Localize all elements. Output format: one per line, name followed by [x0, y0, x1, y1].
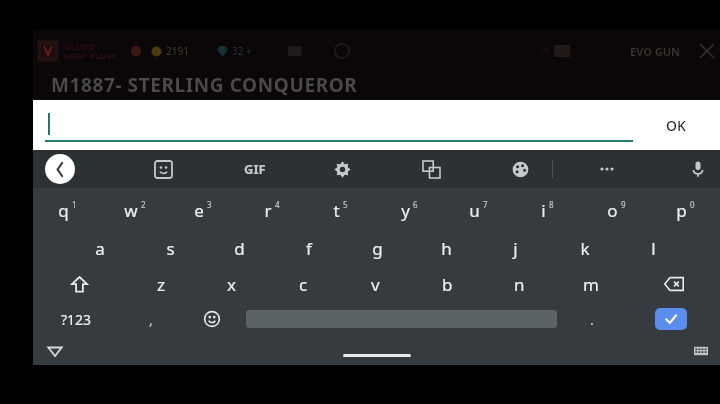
staticText: o: [607, 199, 618, 222]
staticText: g: [372, 237, 383, 260]
button[interactable]: Profile: [37, 40, 59, 62]
button[interactable]: Stickers: [148, 154, 178, 184]
button[interactable]: p: [651, 190, 720, 230]
staticText: 32 +: [232, 44, 252, 58]
staticText: OK: [666, 116, 686, 135]
staticText: 5: [343, 199, 348, 210]
button[interactable]: Settings: [327, 154, 357, 184]
staticText: y: [401, 199, 410, 222]
button[interactable]: Backspace: [627, 266, 720, 302]
staticText: x: [227, 273, 236, 296]
button[interactable]: GIF: [238, 154, 272, 184]
staticText: n: [514, 273, 525, 296]
button[interactable]: c: [267, 266, 339, 302]
button[interactable]: a: [65, 230, 135, 266]
staticText: z: [157, 273, 165, 296]
button[interactable]: m: [555, 266, 627, 302]
button[interactable]: Enter: [655, 308, 687, 330]
button[interactable]: Voice input: [683, 154, 713, 184]
staticText: 8: [549, 199, 554, 210]
staticText: 6: [413, 199, 418, 210]
button[interactable]: o: [582, 190, 651, 230]
staticText: 2191: [166, 44, 189, 58]
button[interactable]: Change keyboard: [688, 338, 714, 364]
staticText: c: [299, 273, 308, 296]
staticText: GLOBD: [64, 40, 96, 52]
button[interactable]: s: [135, 230, 205, 266]
button[interactable]: j: [481, 230, 550, 266]
staticText: 3: [207, 199, 212, 210]
button[interactable]: OK: [658, 110, 694, 141]
button[interactable]: z: [125, 266, 196, 302]
button[interactable]: y: [375, 190, 444, 230]
staticText: f: [306, 237, 312, 260]
staticText: w: [124, 199, 138, 222]
staticText: M1887- STERLING CONQUEROR: [51, 72, 358, 98]
button[interactable]: Hide keyboard: [41, 337, 69, 365]
button[interactable]: n: [483, 266, 555, 302]
button[interactable]: b: [411, 266, 483, 302]
button[interactable]: ?123: [33, 302, 120, 336]
button[interactable]: Back: [45, 154, 75, 184]
button[interactable]: .: [561, 302, 622, 336]
staticText: e: [194, 199, 204, 222]
staticText: v: [371, 273, 380, 296]
staticText: m: [583, 273, 599, 296]
button[interactable]: v: [339, 266, 411, 302]
button[interactable]: l: [619, 230, 688, 266]
staticText: .: [590, 310, 594, 329]
staticText: a: [95, 237, 105, 260]
button[interactable]: Themes: [505, 154, 535, 184]
staticText: EVO GUN: [630, 44, 680, 59]
button[interactable]: t: [306, 190, 375, 230]
staticText: 9: [621, 199, 626, 210]
button[interactable]: EVO GUN: [628, 42, 682, 61]
staticText: 72: [542, 46, 551, 56]
button[interactable]: ,: [120, 302, 181, 336]
staticText: 7: [483, 199, 488, 210]
staticText: 1: [72, 199, 77, 210]
staticText: r: [264, 199, 272, 222]
button[interactable]: r: [237, 190, 306, 230]
staticText: t: [333, 199, 340, 222]
staticText: l: [651, 237, 656, 260]
staticText: u: [469, 199, 480, 222]
staticText: s: [166, 237, 175, 260]
staticText: j: [513, 237, 518, 260]
button[interactable]: k: [550, 230, 619, 266]
button[interactable]: More options: [593, 155, 621, 183]
staticText: 4: [275, 199, 280, 210]
staticText: NIGHT PLAYER: [64, 52, 117, 62]
button[interactable]: q: [33, 190, 101, 230]
staticText: k: [580, 237, 590, 260]
button[interactable]: d: [205, 230, 274, 266]
staticText: ?123: [61, 310, 92, 329]
button[interactable]: Shift: [33, 266, 125, 302]
staticText: 2: [141, 199, 146, 210]
staticText: i: [541, 199, 546, 222]
button[interactable]: Close: [696, 40, 718, 62]
button[interactable]: [45, 108, 633, 142]
staticText: ,: [149, 310, 153, 329]
staticText: h: [441, 237, 452, 260]
button[interactable]: u: [444, 190, 513, 230]
staticText: 0: [690, 199, 695, 210]
button[interactable]: f: [274, 230, 343, 266]
button[interactable]: x: [196, 266, 267, 302]
staticText: b: [442, 273, 453, 296]
button[interactable]: i: [513, 190, 582, 230]
staticText: q: [58, 199, 69, 222]
button[interactable]: g: [343, 230, 412, 266]
button[interactable]: h: [412, 230, 481, 266]
button[interactable]: e: [169, 190, 237, 230]
staticText: p: [676, 199, 687, 222]
staticText: d: [234, 237, 245, 260]
button[interactable]: w: [101, 190, 169, 230]
staticText: GIF: [244, 160, 266, 178]
button[interactable]: Emoji: [181, 302, 242, 336]
button[interactable]: Translate: [416, 154, 446, 184]
